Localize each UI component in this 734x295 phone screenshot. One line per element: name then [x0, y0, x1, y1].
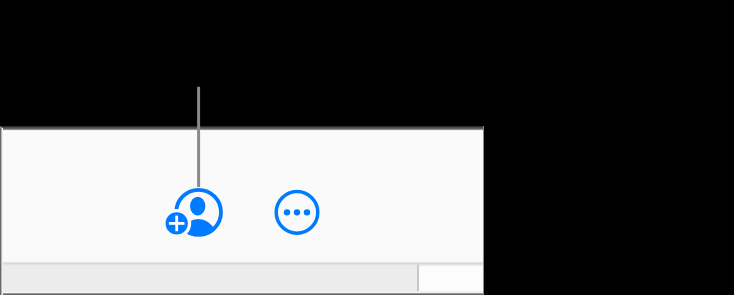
button[interactable]: More options: [274, 189, 320, 235]
button[interactable]: Status: [0, 264, 417, 291]
button[interactable]: Add person: [163, 186, 216, 238]
button[interactable]: Zoom level: [419, 264, 484, 291]
